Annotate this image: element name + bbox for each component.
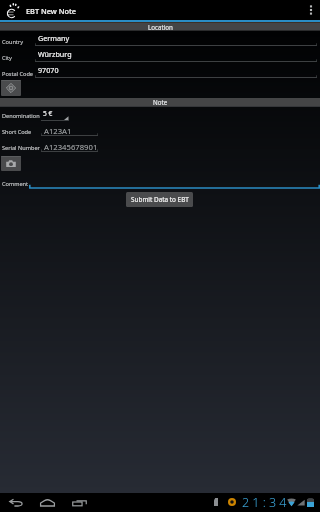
- staticText: Short Code: [2, 128, 32, 136]
- staticText: Location: [148, 23, 173, 30]
- staticText: A123A1: [44, 126, 72, 136]
- staticText: Denomination: [2, 112, 40, 120]
- staticText: EBT New Note: [26, 6, 77, 16]
- button[interactable]: More options: [302, 0, 320, 20]
- staticText: Postal Code: [2, 70, 34, 78]
- staticText: Comment: [2, 180, 29, 188]
- staticText: A12345678901: [44, 142, 98, 152]
- button[interactable]: Take photo: [1, 156, 21, 171]
- button[interactable]: Use current GPS location: [1, 80, 21, 96]
- staticText: 5 €: [43, 109, 53, 118]
- staticText: Country: [2, 38, 24, 46]
- staticText: 21:34: [242, 494, 290, 511]
- staticText: Germany: [38, 33, 70, 43]
- staticText: Submit Data to EBT: [131, 195, 189, 204]
- staticText: Note: [153, 98, 168, 106]
- staticText: Serial Number: [2, 144, 40, 152]
- staticText: City: [2, 54, 12, 62]
- button[interactable]: Recent apps: [72, 498, 87, 508]
- staticText: 97070: [38, 65, 59, 75]
- button[interactable]: Submit Data to EBT: [126, 192, 193, 207]
- button[interactable]: Home: [40, 498, 55, 508]
- staticText: Würzburg: [38, 49, 72, 59]
- button[interactable]: Back: [9, 498, 24, 508]
- button[interactable]: Denomination: [41, 109, 69, 121]
